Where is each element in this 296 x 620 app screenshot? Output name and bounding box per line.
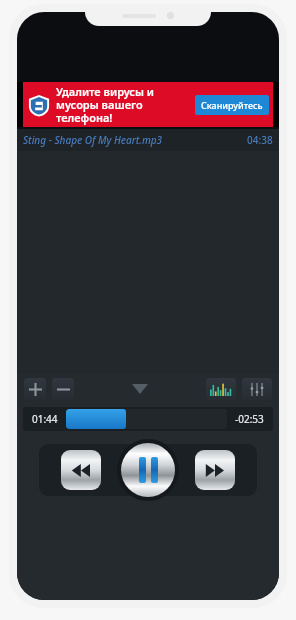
button[interactable]: 01:44 <box>23 407 273 431</box>
staticText: Сканируйтесь <box>201 99 263 111</box>
button[interactable]: Pause <box>117 439 179 501</box>
staticText: 04:38 <box>247 133 273 147</box>
staticText: Удалите вирусы и мусоры вашего телефона! <box>56 84 192 125</box>
button[interactable]: Next <box>195 450 235 490</box>
button[interactable]: Previous <box>61 450 101 490</box>
button[interactable]: Equalizer settings <box>242 378 272 400</box>
button[interactable]: Equalizer visual <box>206 378 236 400</box>
staticText: -02:53 <box>235 412 264 426</box>
button[interactable]: Remove <box>52 378 74 400</box>
button[interactable]: Add <box>24 378 46 400</box>
button[interactable]: Сканируйтесь <box>195 95 269 115</box>
button[interactable]: Удалите вирусы и мусоры вашего телефона! <box>17 82 279 127</box>
button[interactable]: Sting - Shape Of My Heart.mp3 <box>17 129 279 151</box>
staticText: 01:44 <box>32 412 58 426</box>
staticText: Sting - Shape Of My Heart.mp3 <box>23 133 247 147</box>
